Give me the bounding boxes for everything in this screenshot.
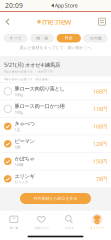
staticText: きゃべつ xyxy=(14,120,34,127)
staticText: エリンギ xyxy=(14,173,34,179)
staticText: 118円 xyxy=(93,105,107,112)
staticText: 100g xyxy=(14,92,22,97)
button[interactable]: きゃべつ xyxy=(0,118,111,135)
staticText: 4品の食材が必要です ・ 合計811円 xyxy=(4,70,53,73)
button[interactable]: 豚ロース肉一口かつ用 xyxy=(0,100,111,117)
staticText: お気に入り xyxy=(34,226,49,230)
staticText: App Store xyxy=(55,2,78,9)
staticText: 1/4個 xyxy=(14,162,23,167)
staticText: 1袋 xyxy=(14,144,20,150)
staticText: 4種の食材が必要です（税込価格） xyxy=(4,78,51,81)
staticText: me:new xyxy=(42,16,71,27)
button[interactable]: エリンギ xyxy=(0,170,111,187)
staticText: 特売食材から献立を作る xyxy=(33,196,77,201)
staticText: 129円 xyxy=(93,140,107,147)
staticText: 100g xyxy=(14,109,22,115)
button[interactable]: 肉・魚 xyxy=(30,34,54,42)
staticText: 買い物 xyxy=(9,226,18,230)
button[interactable]: 豚ロース肉切り落とし xyxy=(0,83,111,100)
staticText: さがす xyxy=(65,226,74,230)
button[interactable]: 野菜 xyxy=(57,34,81,42)
staticText: その他 xyxy=(89,36,101,41)
staticText: すべて xyxy=(10,36,22,41)
button[interactable]: お気に入り xyxy=(28,210,56,233)
button[interactable]: かぼちゃ xyxy=(0,153,111,170)
staticText: かぼちゃ xyxy=(14,155,34,162)
button[interactable]: すべて xyxy=(3,34,28,42)
staticText: 1玉 xyxy=(14,127,20,132)
staticText: 豚ロース肉切り落とし xyxy=(14,85,64,92)
staticText: 野菜 xyxy=(65,36,73,41)
button[interactable]: 買い物 xyxy=(0,210,28,233)
button[interactable]: Back xyxy=(2,12,13,31)
staticText: 20:09 xyxy=(5,1,23,10)
staticText: 1パック xyxy=(14,179,28,185)
staticText: 168円 xyxy=(93,88,107,95)
button[interactable]: その他 xyxy=(83,34,107,42)
staticText: マイページ xyxy=(90,226,105,230)
staticText: ピーマン xyxy=(14,138,34,144)
button[interactable]: ピーマン xyxy=(0,135,111,152)
staticText: 選んだ食材をタップして、買い物かごへ xyxy=(19,45,91,50)
staticText: 78円 xyxy=(96,175,107,182)
staticText: 肉・魚 xyxy=(36,36,48,41)
staticText: 168円 xyxy=(93,123,107,130)
button[interactable]: Menu xyxy=(95,12,109,31)
staticText: 150円 xyxy=(93,158,107,165)
staticText: 豚ロース肉一口かつ用 xyxy=(14,103,64,109)
button[interactable]: さがす xyxy=(55,210,83,233)
button[interactable]: 特売食材から献立を作る xyxy=(20,193,91,204)
button[interactable]: マイページ xyxy=(83,210,111,233)
staticText: 5/21(月) オオゼキ練馬店 xyxy=(4,61,60,68)
